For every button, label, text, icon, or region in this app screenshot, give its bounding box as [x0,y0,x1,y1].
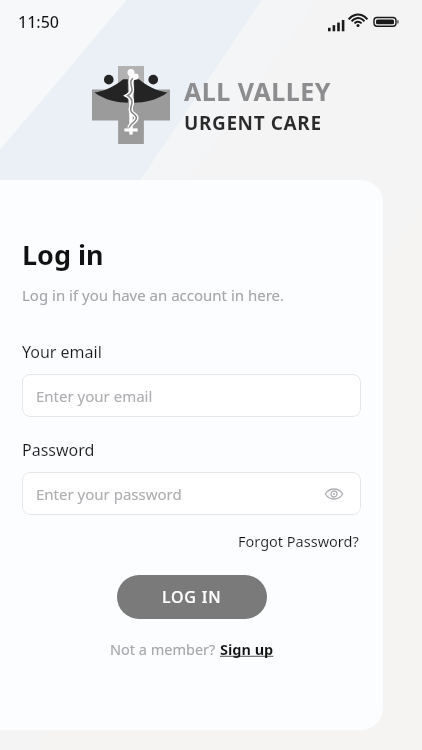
staticText: Forgot Password? [238,531,359,551]
staticText: Log in [22,236,104,273]
staticText: Enter your password [36,484,182,504]
staticText: LOG IN [162,586,222,608]
staticText: Log in if you have an account in here. [22,285,285,305]
staticText: Your email [22,341,102,363]
button[interactable]: Forgot Password? [236,529,361,553]
staticText: ALL VALLEY [184,74,331,108]
staticText: 11:50 [18,11,59,33]
staticText: Password [22,439,95,461]
button[interactable]: Sign up [220,639,274,659]
button[interactable]: Enter your password [22,472,361,515]
staticText: Not a member? [110,639,220,659]
staticText: Sign up [220,639,274,659]
staticText: URGENT CARE [184,110,322,136]
staticText: Enter your email [36,386,153,406]
button[interactable]: Show password [321,481,347,507]
button[interactable]: Enter your email [22,374,361,417]
button[interactable]: LOG IN [117,575,267,619]
